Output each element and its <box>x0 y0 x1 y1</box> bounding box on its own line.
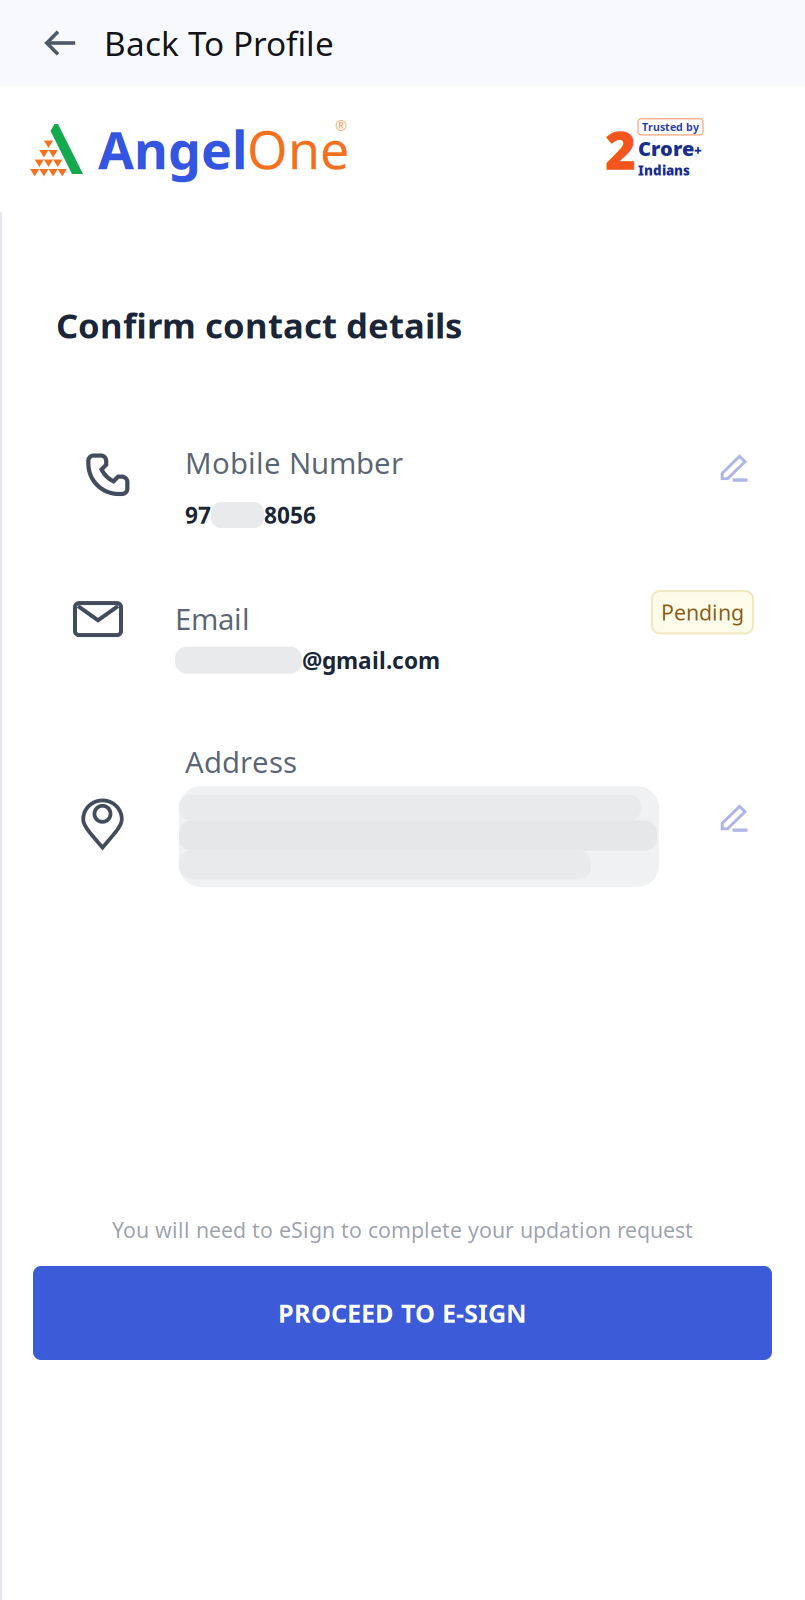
staticText: + <box>694 142 702 159</box>
staticText: Pending <box>661 598 744 626</box>
staticText: One <box>247 114 349 184</box>
staticText: 97 <box>185 500 211 530</box>
staticText: PROCEED TO E-SIGN <box>278 1296 527 1330</box>
staticText: Address <box>185 742 297 781</box>
staticText: Mobile Number <box>185 443 403 482</box>
staticText: 2 <box>605 114 636 184</box>
staticText: ® <box>335 115 349 135</box>
staticText: Angel <box>98 114 247 184</box>
button[interactable]: Edit mobile number <box>716 450 754 486</box>
staticText: 8056 <box>264 500 316 530</box>
staticText: @gmail.com <box>302 645 440 675</box>
staticText: Indians <box>638 161 690 179</box>
staticText: Confirm contact details <box>56 302 462 348</box>
button[interactable]: Back To Profile <box>0 0 805 86</box>
staticText: Trusted by <box>642 120 699 134</box>
staticText: You will need to eSign to complete your … <box>112 1216 693 1244</box>
button[interactable]: Edit address <box>716 800 754 836</box>
button[interactable]: Pending <box>652 591 753 633</box>
staticText: Crore <box>638 135 694 162</box>
staticText: Email <box>175 599 250 638</box>
staticText: Back To Profile <box>104 21 334 65</box>
button[interactable]: PROCEED TO E-SIGN <box>33 1266 772 1360</box>
